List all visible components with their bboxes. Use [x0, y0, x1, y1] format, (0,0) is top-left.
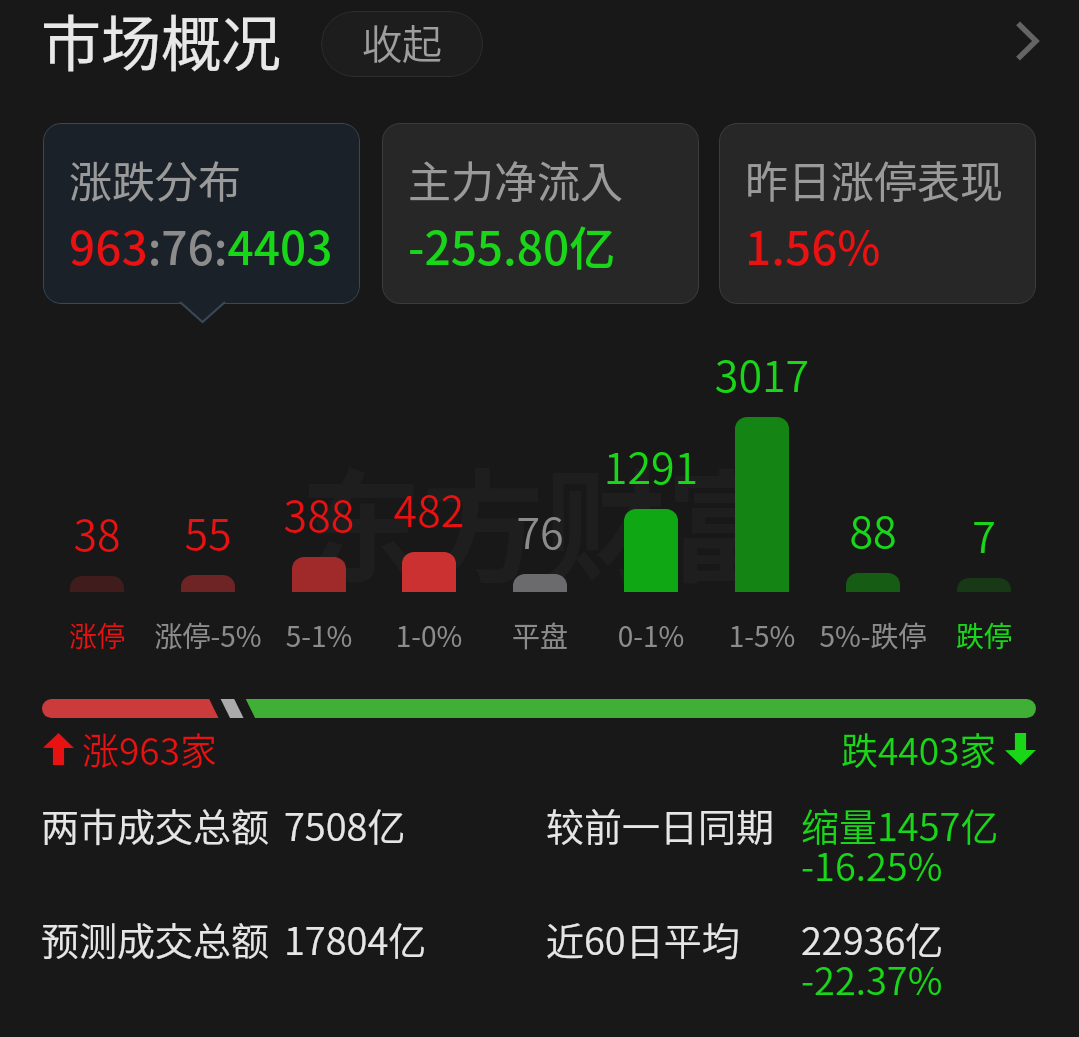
staticText: 较前一日同期: [546, 797, 775, 852]
staticText: 涨跌分布: [69, 148, 241, 210]
staticText: 7: [904, 503, 1064, 565]
staticText: 963:76:4403: [69, 212, 333, 279]
staticText: 两市成交总额: [41, 797, 270, 852]
staticText: 5-1%: [239, 615, 399, 656]
button[interactable]: 昨日涨停表现: [719, 123, 1036, 304]
button[interactable]: 涨跌分布: [43, 123, 360, 304]
staticText: 3017: [682, 342, 842, 404]
staticText: 17804亿: [284, 911, 427, 966]
staticText: 88: [793, 498, 953, 560]
staticText: 5%-跌停: [793, 615, 953, 656]
staticText: -16.25%: [801, 837, 943, 892]
staticText: 跌4403家: [841, 722, 997, 776]
button[interactable]: 展开: [995, 9, 1059, 73]
staticText: -255.80亿: [408, 212, 616, 279]
staticText: 0-1%: [571, 615, 731, 656]
staticText: 主力净流入: [408, 148, 623, 210]
staticText: 市场概况: [41, 0, 281, 83]
staticText: 涨停-5%: [128, 615, 288, 656]
staticText: 预测成交总额: [41, 911, 270, 966]
staticText: 1291: [571, 434, 731, 496]
staticText: 昨日涨停表现: [745, 148, 1003, 210]
staticText: 7508亿: [284, 797, 406, 852]
staticText: 东方财富: [300, 430, 788, 607]
staticText: 55: [128, 500, 288, 562]
staticText: 1.56%: [745, 212, 881, 279]
staticText: 388: [239, 482, 399, 544]
staticText: 1-5%: [682, 615, 842, 656]
staticText: 涨963家: [82, 722, 217, 776]
button[interactable]: 收起: [321, 11, 483, 77]
staticText: 38: [17, 501, 177, 563]
staticText: 缩量1457亿: [801, 797, 999, 852]
staticText: 22936亿: [801, 911, 944, 966]
staticText: 76: [460, 499, 620, 561]
staticText: -22.37%: [801, 951, 943, 1006]
button[interactable]: 主力净流入: [382, 123, 699, 304]
staticText: 收起: [362, 13, 442, 71]
staticText: 涨停: [17, 615, 177, 656]
staticText: 近60日平均: [546, 911, 740, 966]
staticText: 跌停: [904, 615, 1064, 656]
staticText: 平盘: [460, 615, 620, 656]
staticText: 482: [349, 477, 509, 539]
staticText: 1-0%: [349, 615, 509, 656]
